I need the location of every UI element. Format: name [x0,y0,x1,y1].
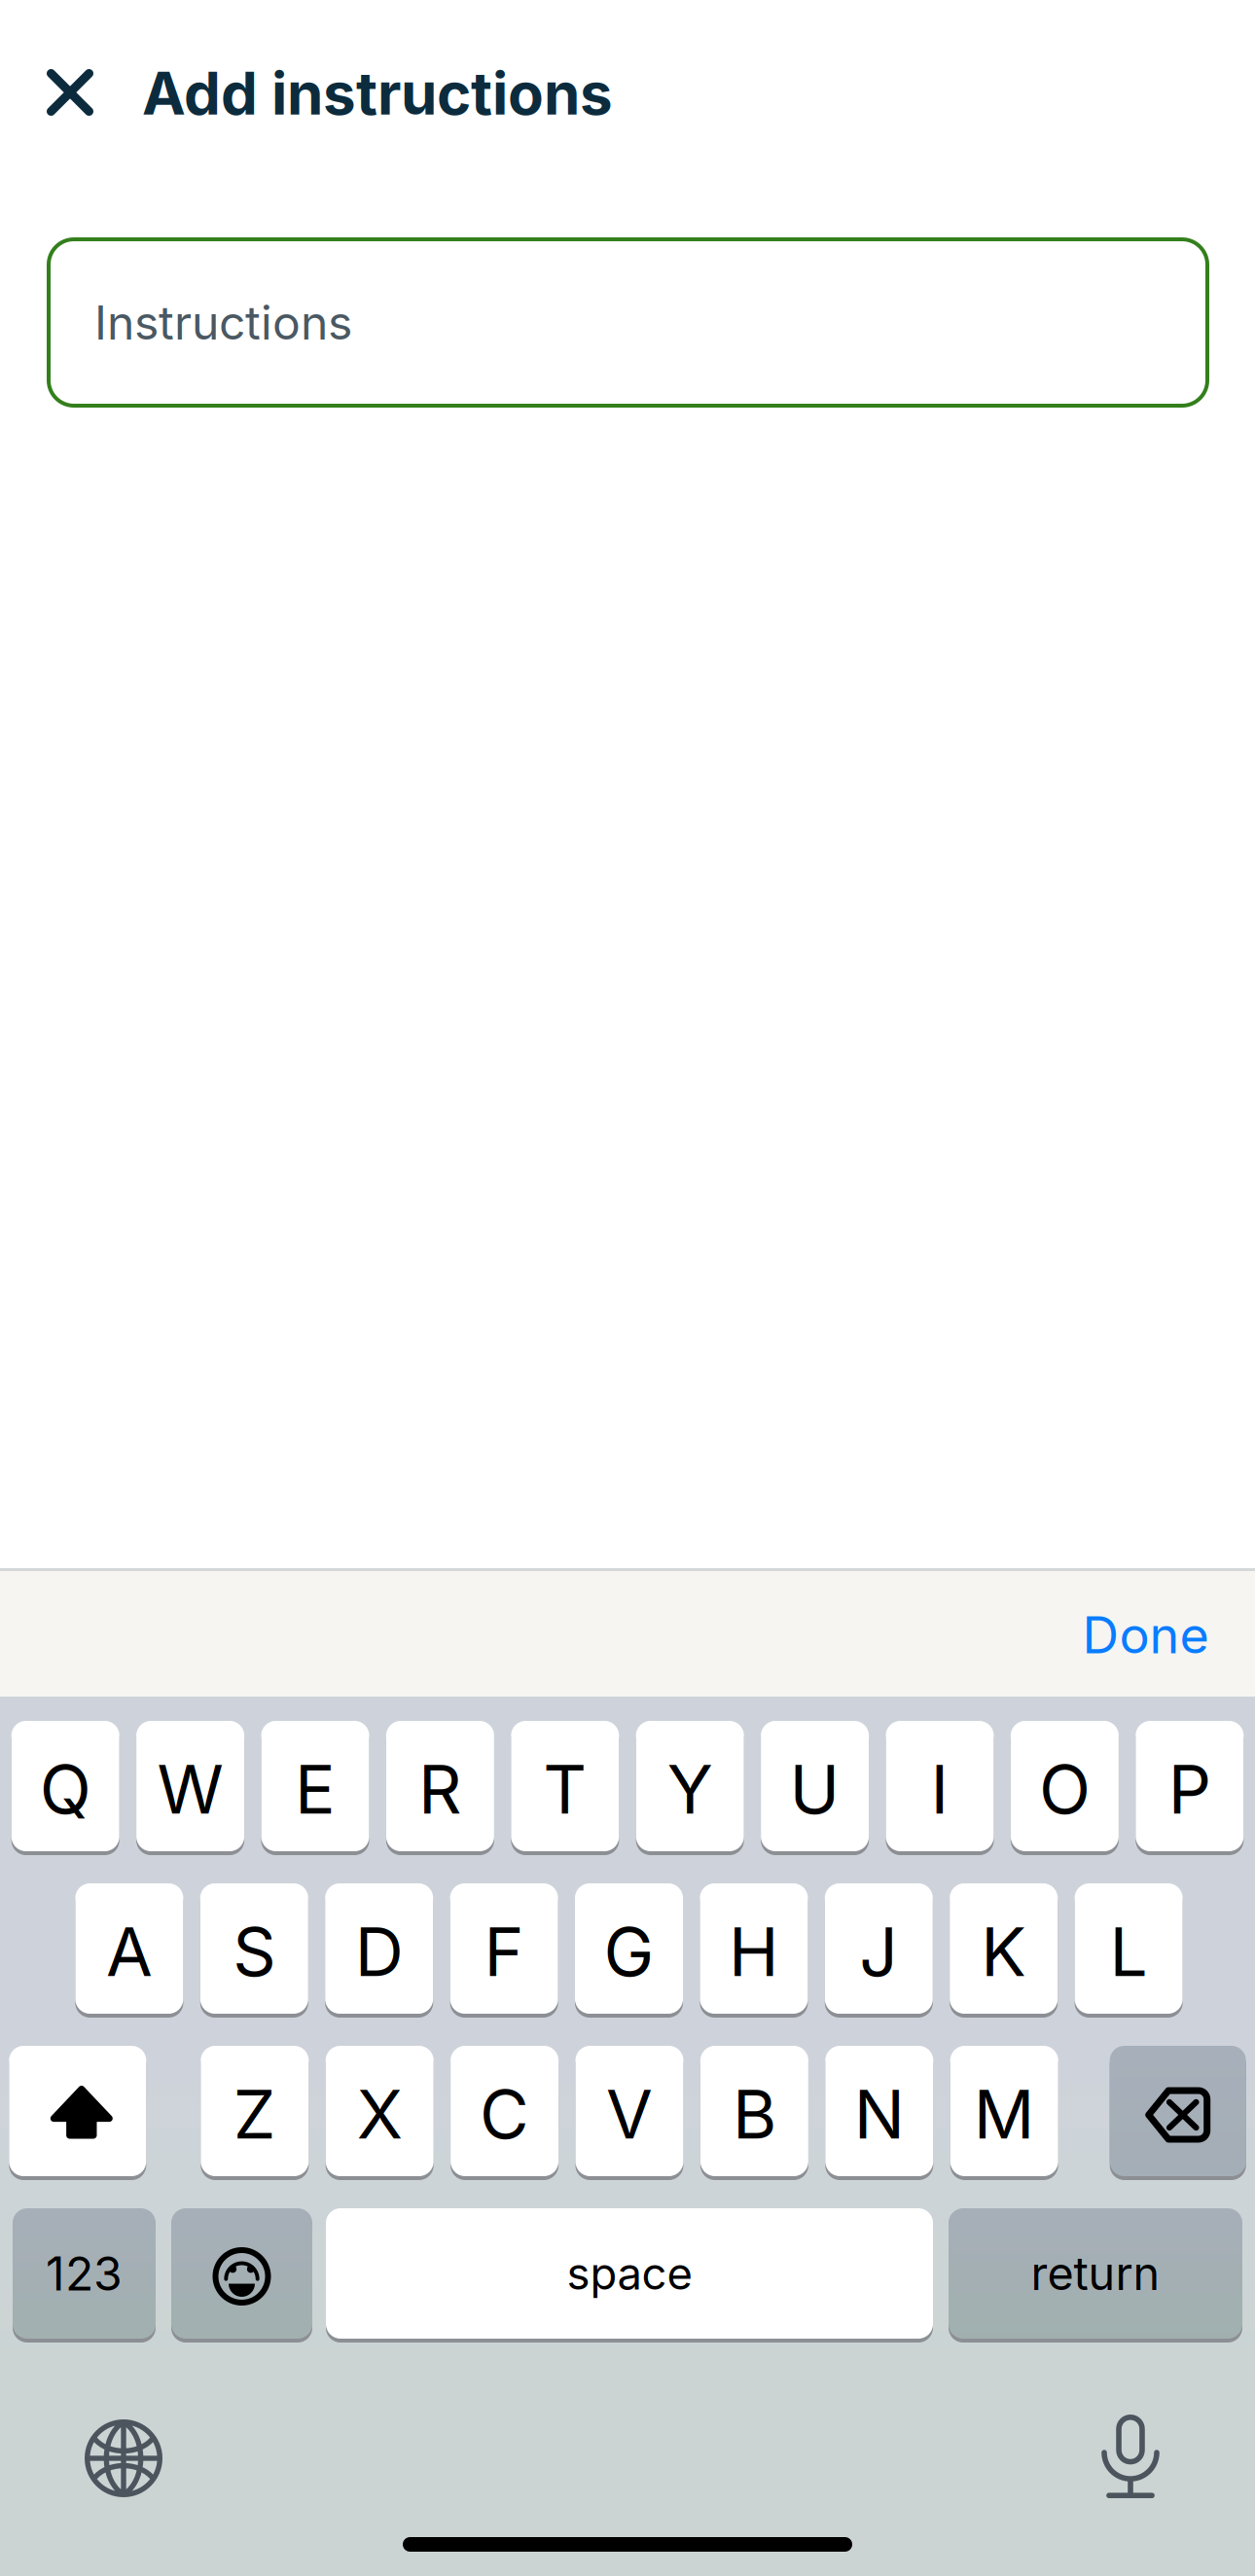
button[interactable]: N [825,2046,933,2180]
staticText: Y [667,1748,713,1830]
staticText: Z [233,2073,276,2155]
staticText: U [790,1748,840,1830]
staticText: C [480,2073,529,2155]
button[interactable]: F [450,1883,558,2018]
staticText: Instructions [94,294,352,351]
button[interactable]: L [1075,1883,1183,2018]
button[interactable]: H [700,1883,808,2018]
staticText: 123 [46,2245,123,2302]
button[interactable]: Next keyboard [85,2419,162,2497]
staticText: J [859,1911,898,1992]
staticText: return [1031,2246,1160,2301]
button[interactable]: R [386,1721,494,1855]
staticText: B [732,2073,776,2155]
button[interactable]: Instructions [49,239,1207,406]
staticText: W [157,1748,223,1830]
staticText: G [604,1911,654,1992]
button[interactable]: Dictate [1094,2415,1167,2498]
button[interactable] [9,2046,146,2180]
button[interactable]: E [261,1721,369,1855]
button[interactable]: B [700,2046,808,2180]
button[interactable]: Done [1058,1573,1233,1697]
staticText: I [931,1748,949,1830]
button[interactable]: P [1136,1721,1244,1855]
staticText: D [355,1911,403,1992]
staticText: P [1168,1748,1211,1830]
staticText: Done [1082,1604,1209,1665]
button[interactable]: U [761,1721,869,1855]
button[interactable]: W [136,1721,244,1855]
staticText: E [295,1748,336,1830]
staticText: V [606,2073,653,2155]
button[interactable] [171,2208,312,2343]
staticText: K [981,1911,1027,1992]
button[interactable]: K [950,1883,1058,2018]
button[interactable]: V [575,2046,683,2180]
button[interactable]: J [825,1883,933,2018]
button[interactable]: M [950,2046,1058,2180]
staticText: M [974,2073,1035,2155]
staticText: Add instructions [142,58,613,129]
button[interactable]: Q [11,1721,119,1855]
button[interactable]: T [511,1721,619,1855]
button[interactable]: I [886,1721,994,1855]
staticText: N [854,2073,905,2155]
button[interactable]: Close [26,69,114,116]
staticText: A [106,1911,153,1992]
button[interactable]: C [451,2046,559,2180]
staticText: F [484,1911,524,1992]
button[interactable]: S [200,1883,308,2018]
staticText: T [543,1748,587,1830]
staticText: L [1110,1911,1148,1992]
staticText: S [233,1911,276,1992]
button[interactable]: space [326,2208,933,2343]
button[interactable]: O [1011,1721,1119,1855]
button[interactable]: Y [636,1721,744,1855]
staticText: H [729,1911,779,1992]
button[interactable]: 123 [13,2208,156,2343]
button[interactable]: D [325,1883,433,2018]
button[interactable]: return [949,2208,1242,2343]
staticText: O [1039,1748,1090,1830]
button[interactable]: G [575,1883,683,2018]
staticText: R [418,1748,462,1830]
staticText: space [567,2247,692,2300]
staticText: Q [40,1748,91,1830]
button[interactable] [1110,2046,1246,2180]
button[interactable]: A [75,1883,183,2018]
staticText: X [357,2073,402,2155]
button[interactable]: X [326,2046,434,2180]
button[interactable]: Z [201,2046,309,2180]
